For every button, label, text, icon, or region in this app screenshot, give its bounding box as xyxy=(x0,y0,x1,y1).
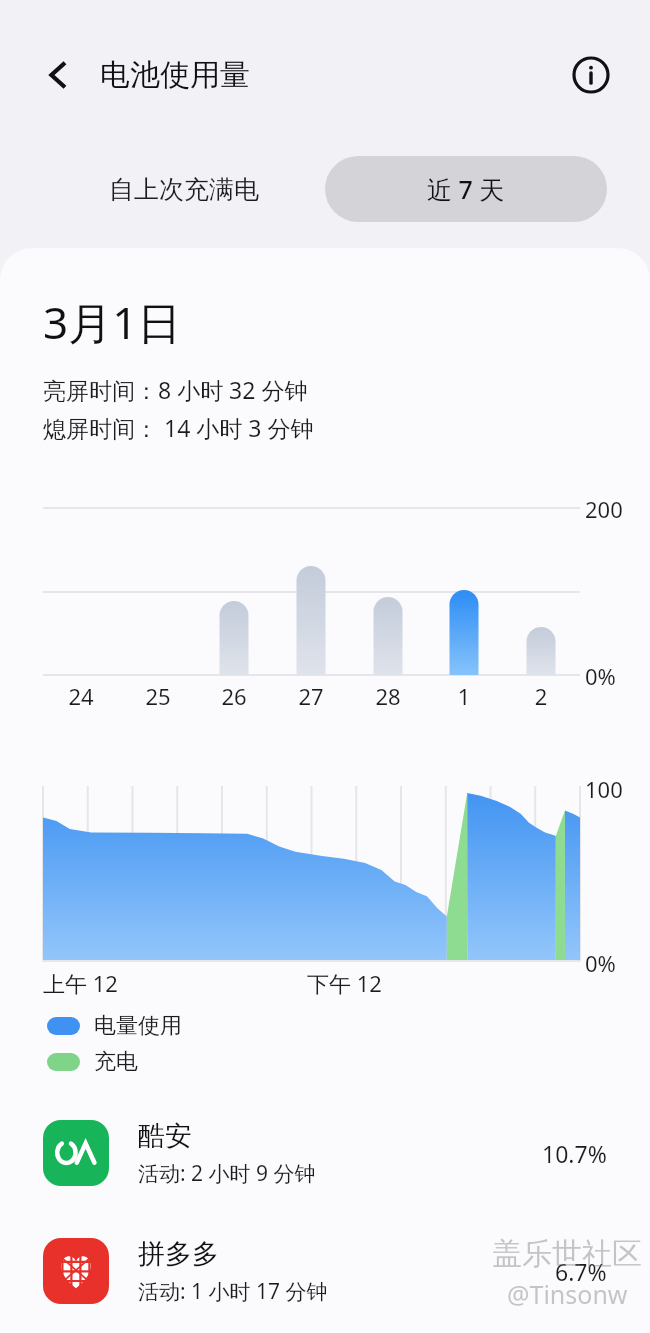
staticText: 200 xyxy=(585,494,623,524)
staticText: 活动: 1 小时 17 分钟 xyxy=(138,1277,328,1306)
staticText: 27 xyxy=(281,681,341,711)
button[interactable]: 拼多多 xyxy=(0,1212,650,1330)
staticText: 自上次充满电 xyxy=(109,174,259,205)
staticText: 电池使用量 xyxy=(100,56,250,94)
button[interactable]: 自上次充满电 xyxy=(43,156,325,222)
button[interactable]: Back xyxy=(30,47,86,103)
staticText: 活动: 2 小时 9 分钟 xyxy=(138,1159,316,1188)
staticText: 0% xyxy=(585,948,616,978)
staticText: 盖乐世社区 xyxy=(492,1235,642,1273)
staticText: 25 xyxy=(128,681,188,711)
staticText: 近 7 天 xyxy=(427,172,505,206)
staticText: 上午 12 xyxy=(43,968,118,998)
staticText: 0% xyxy=(585,661,616,691)
button[interactable]: Information xyxy=(564,48,618,102)
staticText: 熄屏时间： 14 小时 3 分钟 xyxy=(43,412,314,443)
staticText: 100 xyxy=(585,774,623,804)
staticText: 拼多多 xyxy=(138,1237,219,1271)
staticText: 24 xyxy=(51,681,111,711)
staticText: 2 xyxy=(511,681,571,711)
staticText: 3月1日 xyxy=(43,292,182,352)
staticText: 28 xyxy=(358,681,418,711)
button[interactable]: 酷安 xyxy=(0,1094,650,1212)
staticText: 充电 xyxy=(94,1048,138,1076)
staticText: 酷安 xyxy=(138,1119,192,1153)
staticText: 亮屏时间：8 小时 32 分钟 xyxy=(43,374,308,405)
staticText: 6.7% xyxy=(555,1256,607,1287)
staticText: @Tinsonw xyxy=(507,1277,628,1311)
staticText: 电量使用 xyxy=(94,1012,182,1040)
staticText: 1 xyxy=(434,681,494,711)
staticText: 10.7% xyxy=(542,1138,607,1169)
button[interactable]: 近 7 天 xyxy=(325,156,607,222)
staticText: 26 xyxy=(204,681,264,711)
staticText: 下午 12 xyxy=(307,968,382,998)
